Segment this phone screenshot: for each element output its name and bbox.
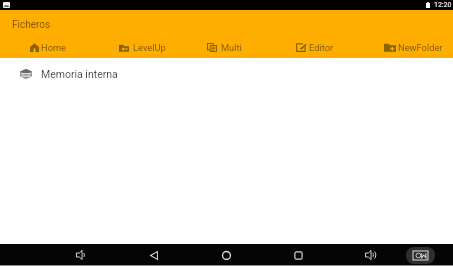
staticText: LevelUp (133, 42, 166, 53)
button[interactable]: Memoria interna (0, 58, 453, 90)
button[interactable]: Multi (207, 37, 242, 58)
staticText: Editor (309, 42, 334, 53)
button[interactable]: Screenshot (398, 244, 442, 266)
button[interactable]: Home (204, 244, 248, 266)
staticText: Ficheros (12, 19, 51, 31)
button[interactable]: Back (132, 244, 176, 266)
button[interactable]: Volume up (348, 244, 392, 266)
button[interactable]: Home (30, 37, 67, 58)
staticText: NewFolder (398, 42, 443, 53)
button[interactable]: Editor (296, 37, 334, 58)
button[interactable]: Recents (276, 244, 320, 266)
button[interactable]: Volume down (59, 244, 103, 266)
staticText: Memoria interna (41, 68, 118, 80)
staticText: 12:20 (434, 1, 452, 9)
staticText: Multi (221, 42, 242, 53)
button[interactable]: NewFolder (384, 37, 443, 58)
button[interactable]: LevelUp (119, 37, 166, 58)
staticText: Home (41, 42, 67, 53)
